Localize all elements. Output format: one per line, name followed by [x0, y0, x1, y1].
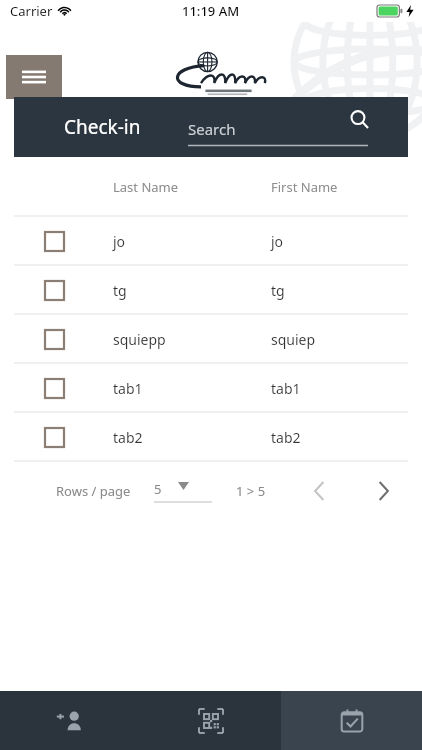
staticText: tab2	[113, 428, 143, 447]
button[interactable]: Add attendee	[0, 691, 140, 750]
button[interactable]: Select jo	[14, 217, 408, 265]
button[interactable]: Select tg	[14, 266, 408, 314]
button[interactable]: Check-in list	[281, 691, 422, 750]
button[interactable]: Select squiepp	[14, 315, 408, 363]
staticText: Search	[188, 119, 236, 139]
button[interactable]: Select squiepp	[44, 329, 65, 350]
button[interactable]: Previous page	[302, 474, 336, 508]
staticText: Check-in	[64, 114, 141, 140]
staticText: Last Name	[113, 178, 179, 196]
button[interactable]: 5	[154, 475, 212, 503]
staticText: tab1	[113, 379, 143, 398]
staticText: squiepp	[113, 330, 166, 349]
staticText: First Name	[271, 178, 338, 196]
button[interactable]: Select jo	[44, 231, 65, 252]
staticText: tab2	[271, 428, 301, 447]
button[interactable]: Search	[188, 112, 368, 146]
button[interactable]: Next page	[366, 474, 400, 508]
staticText: tg	[113, 281, 127, 300]
button[interactable]: Scan QR code	[140, 691, 281, 750]
staticText: 5	[154, 480, 162, 498]
button[interactable]: Select tab1	[14, 364, 408, 412]
button[interactable]: Menu	[6, 55, 62, 99]
staticText: jo	[113, 232, 126, 251]
button[interactable]: Search	[344, 104, 374, 134]
staticText: tab1	[271, 379, 301, 398]
staticText: tg	[271, 281, 285, 300]
button[interactable]: Select tab2	[14, 413, 408, 461]
button[interactable]: Select tab1	[44, 378, 65, 399]
staticText: 11:19 AM	[182, 2, 240, 20]
staticText: jo	[271, 232, 284, 251]
staticText: Carrier	[10, 2, 53, 20]
staticText: 1 > 5	[236, 482, 266, 500]
staticText: Rows / page	[56, 482, 131, 500]
button[interactable]: Select tab2	[44, 427, 65, 448]
staticText: squiep	[271, 330, 316, 349]
button[interactable]: Select tg	[44, 280, 65, 301]
